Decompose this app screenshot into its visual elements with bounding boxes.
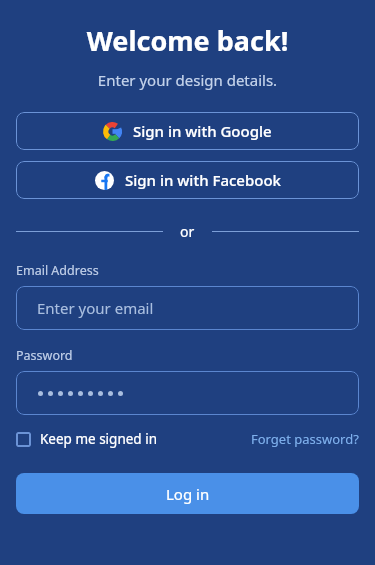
staticText: Email Address [16,262,99,279]
button[interactable]: Keep me signed in [16,430,157,448]
staticText: Log in [166,484,210,504]
staticText: Enter your email [37,298,154,318]
staticText: Sign in with Google [133,121,272,141]
button[interactable] [16,371,359,415]
staticText: Enter your design details. [16,70,359,90]
staticText: Welcome back! [16,22,359,59]
staticText: Keep me signed in [40,430,157,448]
button[interactable]: Log in [16,473,359,514]
staticText: Password [16,347,73,364]
button[interactable]: Forget password? [251,430,359,448]
staticText: Sign in with Facebook [125,170,281,190]
button[interactable]: Enter your email [16,286,359,330]
button[interactable]: Sign in with Google [16,112,359,150]
button[interactable]: Sign in with Facebook [16,161,359,199]
staticText: or [180,222,195,241]
